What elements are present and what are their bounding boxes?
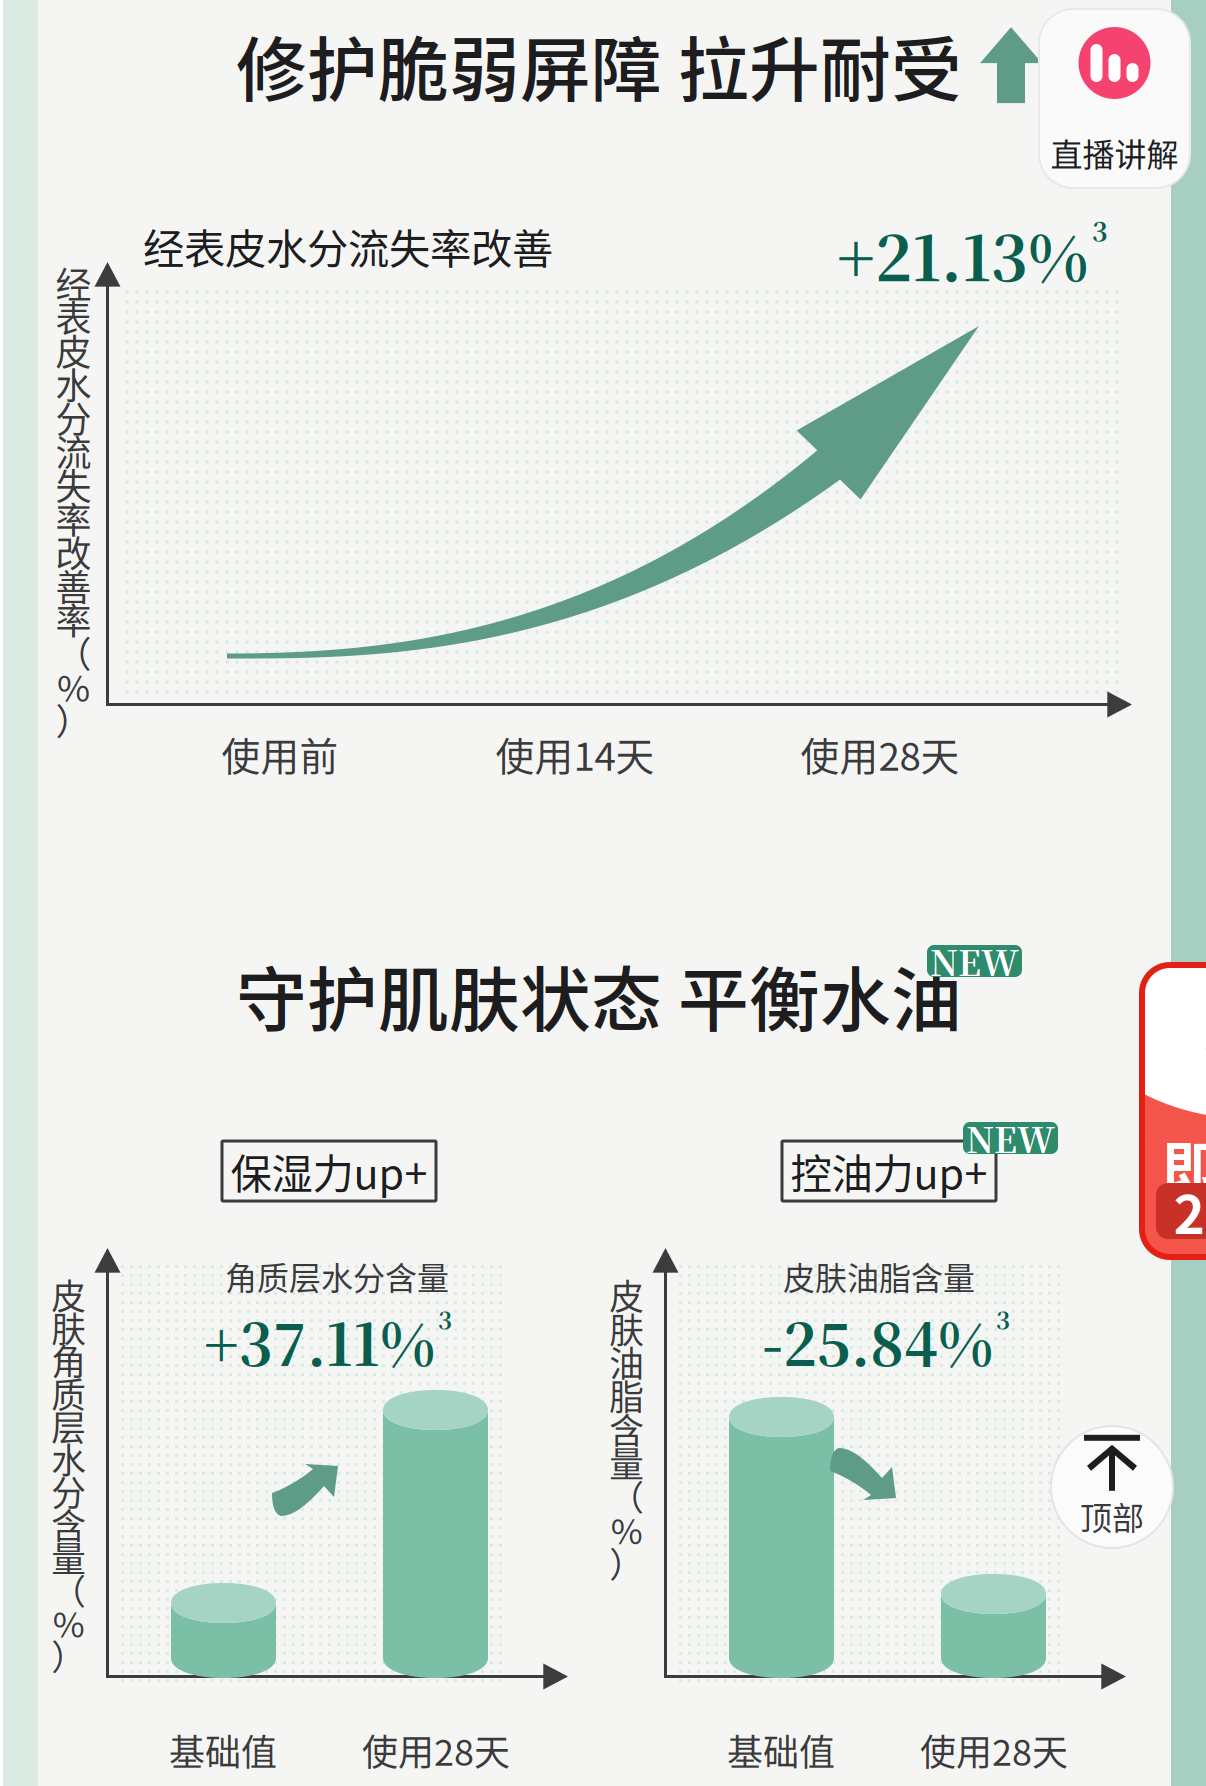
staticText: 肤: [609, 1303, 644, 1353]
staticText: 经: [56, 257, 92, 309]
staticText: 控油力up+: [790, 1141, 987, 1201]
staticText: 基础值: [169, 1724, 277, 1776]
staticText: 水: [56, 357, 92, 410]
staticText: 含: [609, 1404, 644, 1454]
staticText: 率: [56, 593, 92, 645]
staticText: 皮: [609, 1270, 644, 1320]
staticText: 即: [1162, 1123, 1206, 1204]
button[interactable]: 直播讲解: [1039, 9, 1190, 188]
staticText: 使用前: [221, 726, 338, 782]
staticText: 皮: [51, 1269, 86, 1319]
staticText: 顶部: [1080, 1493, 1144, 1539]
staticText: +21.13%: [837, 209, 1089, 299]
staticText: 脂: [609, 1370, 644, 1420]
staticText: 量: [609, 1437, 644, 1487]
staticText: NEW: [966, 1113, 1055, 1163]
staticText: 券: [1204, 1003, 1206, 1080]
staticText: 基础值: [727, 1724, 835, 1776]
staticText: 使用28天: [800, 726, 959, 782]
staticText: 使用28天: [920, 1724, 1068, 1776]
staticText: NEW: [930, 936, 1019, 986]
staticText: -25.84%: [762, 1300, 993, 1382]
staticText: 3: [996, 1302, 1010, 1336]
staticText: 2-: [1173, 1172, 1206, 1250]
staticText: 皮: [56, 324, 92, 376]
staticText: 量: [51, 1532, 86, 1582]
staticText: 表: [56, 290, 92, 342]
staticText: 层: [51, 1400, 86, 1451]
staticText: 质: [51, 1368, 86, 1418]
staticText: 角质层水分含量: [225, 1253, 449, 1299]
staticText: 使用28天: [362, 1724, 510, 1776]
staticText: %: [53, 1597, 85, 1647]
staticText: （: [56, 626, 92, 678]
staticText: 修护脆弱屏障 拉升耐受: [236, 14, 962, 116]
button[interactable]: Back to top: [1051, 1426, 1173, 1548]
staticText: 皮肤油脂含量: [783, 1253, 975, 1299]
staticText: 分: [56, 391, 92, 443]
staticText: 善: [56, 559, 92, 611]
staticText: 使用14天: [495, 726, 654, 782]
staticText: 油: [609, 1337, 644, 1387]
staticText: %: [57, 660, 90, 712]
staticText: 角: [51, 1335, 86, 1385]
staticText: 保湿力up+: [230, 1141, 427, 1201]
staticText: 含: [51, 1499, 86, 1549]
staticText: 失: [56, 458, 92, 510]
staticText: 水: [51, 1433, 86, 1483]
staticText: 经表皮水分流失率改善: [143, 216, 553, 276]
staticText: 率: [56, 492, 92, 544]
staticText: 分: [51, 1466, 86, 1516]
staticText: 流: [56, 425, 92, 477]
staticText: 直播讲解: [1050, 129, 1178, 176]
staticText: （: [609, 1471, 644, 1521]
staticText: 改: [56, 525, 92, 578]
staticText: 肤: [51, 1302, 86, 1352]
staticText: 守护肌肤状态 平衡水油: [236, 944, 962, 1046]
staticText: 3: [438, 1302, 452, 1336]
staticText: %: [611, 1504, 643, 1554]
staticText: ）: [609, 1538, 644, 1588]
staticText: +37.11%: [204, 1300, 435, 1382]
staticText: ）: [51, 1630, 86, 1680]
staticText: ）: [56, 693, 92, 746]
staticText: 3: [1092, 211, 1108, 249]
staticText: （: [51, 1564, 86, 1615]
button[interactable]: 券: [1142, 965, 1206, 1257]
